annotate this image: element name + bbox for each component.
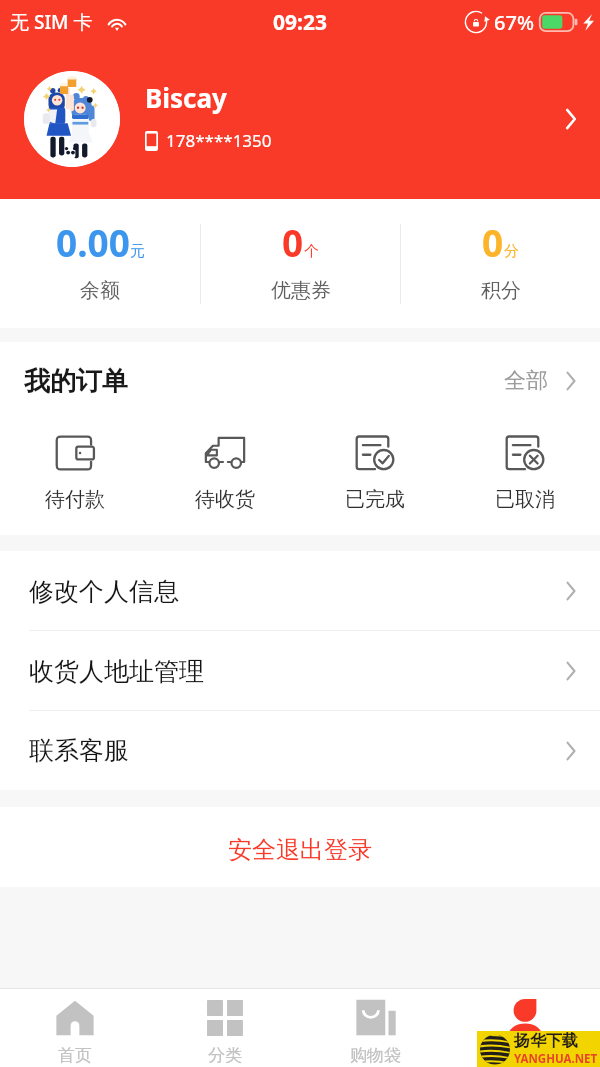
staticText: 收货人地址管理 (29, 656, 204, 687)
staticText: 09:23 (273, 8, 327, 37)
button[interactable]: 收货人地址管理 (0, 631, 600, 711)
staticText: 购物袋 (350, 1045, 401, 1066)
staticText: 全部 (504, 367, 548, 395)
button[interactable]: Avatar (24, 71, 120, 167)
staticText: 元 (130, 242, 145, 261)
button[interactable]: 0.00 (0, 221, 200, 307)
button[interactable]: 待收货 (150, 420, 300, 501)
button[interactable]: 首页 (0, 989, 150, 1067)
staticText: 个 (304, 242, 319, 261)
staticText: Biscay (145, 80, 227, 115)
staticText: 我的 (508, 1045, 542, 1066)
staticText: 分 (504, 242, 519, 261)
button[interactable]: 我的订单 (0, 342, 600, 420)
button[interactable]: 已取消 (450, 420, 600, 501)
button[interactable]: 联系客服 (0, 711, 600, 790)
button[interactable]: 0 (401, 221, 600, 307)
staticText: 积分 (481, 278, 521, 303)
button[interactable]: 修改个人信息 (0, 551, 600, 631)
staticText: 无 SIM 卡 (10, 9, 93, 35)
staticText: 联系客服 (29, 735, 129, 766)
staticText: 0 (282, 217, 304, 267)
staticText: 优惠券 (271, 278, 331, 303)
staticText: 待收货 (195, 487, 255, 512)
staticText: 我的订单 (24, 365, 128, 398)
button[interactable]: 已完成 (300, 420, 450, 501)
button[interactable]: 购物袋 (300, 989, 450, 1067)
button[interactable]: 我的 (450, 989, 600, 1067)
staticText: 修改个人信息 (29, 576, 179, 607)
staticText: 扬华下载 (514, 1031, 578, 1051)
button[interactable]: 待付款 (0, 420, 150, 501)
staticText: 已取消 (495, 487, 555, 512)
staticText: 67% (494, 9, 534, 36)
staticText: 178****1350 (166, 129, 272, 152)
staticText: 首页 (58, 1045, 92, 1066)
staticText: 0.00 (56, 217, 130, 267)
staticText: 已完成 (345, 487, 405, 512)
button[interactable]: 分类 (150, 989, 300, 1067)
staticText: 分类 (208, 1045, 242, 1066)
staticText: 安全退出登录 (228, 835, 372, 865)
staticText: 余额 (80, 278, 120, 303)
staticText: 待付款 (45, 487, 105, 512)
button[interactable]: Profile details (549, 97, 593, 141)
button[interactable]: 0 (201, 221, 400, 307)
staticText: YANGHUA.NET (514, 1051, 598, 1067)
button[interactable]: 安全退出登录 (0, 807, 600, 887)
staticText: 0 (482, 217, 504, 267)
